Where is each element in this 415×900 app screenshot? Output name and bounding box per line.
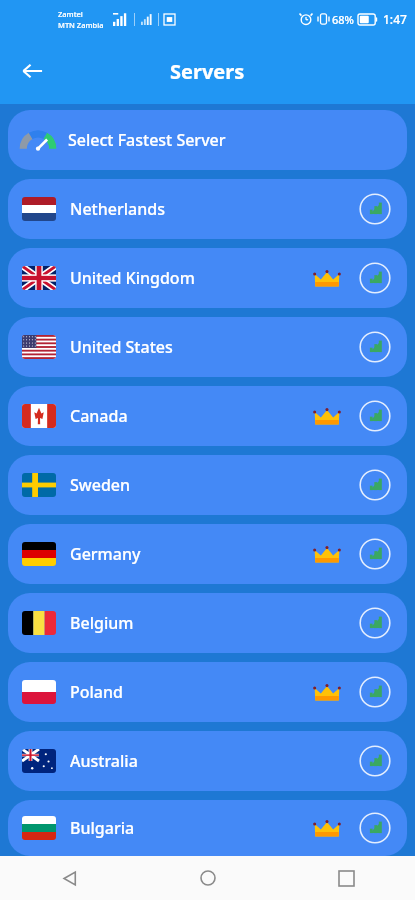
staticText: Bulgaria: [70, 817, 135, 839]
other: Connection quality: [359, 607, 391, 639]
staticText: 68%: [332, 12, 354, 27]
other: Connection quality: [359, 262, 391, 294]
other: Connection quality: [359, 812, 391, 844]
other: Connection quality: [359, 331, 391, 363]
other: Premium: [313, 544, 341, 564]
button[interactable]: Select Fastest Server: [8, 110, 407, 170]
other: Connection quality: [359, 745, 391, 777]
other: Premium: [313, 682, 341, 702]
button[interactable]: Home: [139, 856, 277, 900]
staticText: Australia: [70, 750, 138, 772]
staticText: 1:47: [383, 11, 407, 27]
button[interactable]: Back: [10, 49, 54, 93]
button[interactable]: Germany: [8, 524, 407, 584]
button[interactable]: Australia: [8, 731, 407, 791]
staticText: Netherlands: [70, 198, 165, 220]
other: Premium: [313, 406, 341, 426]
other: Connection quality: [359, 538, 391, 570]
other: Connection quality: [359, 676, 391, 708]
button[interactable]: Sweden: [8, 455, 407, 515]
button[interactable]: Bulgaria: [8, 800, 407, 856]
staticText: Poland: [70, 681, 123, 703]
button[interactable]: United States: [8, 317, 407, 377]
staticText: Germany: [70, 543, 141, 565]
other: Connection quality: [359, 400, 391, 432]
staticText: Zamtel: [58, 9, 83, 19]
staticText: MTN Zambia: [58, 20, 104, 30]
staticText: Canada: [70, 405, 128, 427]
staticText: Select Fastest Server: [68, 129, 226, 151]
staticText: Servers: [170, 58, 245, 85]
button[interactable]: Back: [0, 856, 139, 900]
button[interactable]: Poland: [8, 662, 407, 722]
staticText: United States: [70, 336, 173, 358]
button[interactable]: Netherlands: [8, 179, 407, 239]
other: Premium: [313, 268, 341, 288]
button[interactable]: Recent apps: [277, 856, 415, 900]
other: Premium: [313, 818, 341, 838]
staticText: Belgium: [70, 612, 134, 634]
staticText: Sweden: [70, 474, 131, 496]
button[interactable]: United Kingdom: [8, 248, 407, 308]
button[interactable]: Belgium: [8, 593, 407, 653]
other: Connection quality: [359, 469, 391, 501]
button[interactable]: Canada: [8, 386, 407, 446]
other: Connection quality: [359, 193, 391, 225]
staticText: United Kingdom: [70, 267, 195, 289]
